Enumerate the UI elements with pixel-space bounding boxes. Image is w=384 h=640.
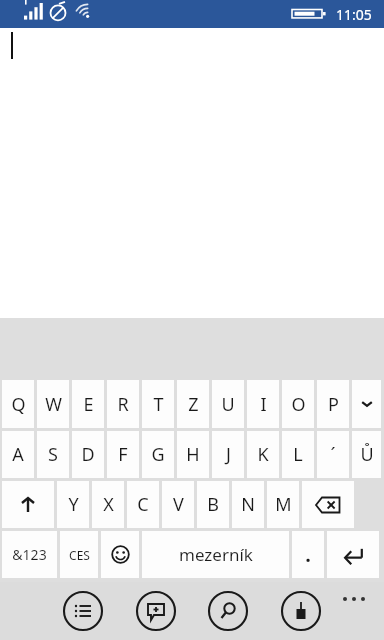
button[interactable]: R [107,380,139,428]
staticText: Ů [360,442,374,467]
button[interactable]: A [2,431,34,478]
button[interactable]: E [72,380,104,428]
button[interactable]: Format list [62,590,104,632]
button[interactable]: Backspace [302,481,354,528]
button[interactable]: W [37,380,69,428]
staticText: L [293,442,303,467]
staticText: 11:05 [336,5,372,24]
staticText: CES [69,547,90,563]
button[interactable]: G [142,431,174,478]
staticText: T [153,392,164,417]
staticText: ´ [330,442,336,467]
button[interactable]: P [317,380,349,428]
button[interactable]: K [247,431,279,478]
staticText: V [173,492,184,517]
other: Enter [342,544,364,566]
button[interactable]: Emoji [101,531,139,578]
button[interactable]: Q [2,380,34,428]
staticText: &123 [12,545,47,564]
staticText: S [48,442,58,467]
staticText: . [305,541,311,568]
staticText: J [226,442,231,467]
other: Backspace [315,496,341,514]
button[interactable]: Ů [352,431,381,478]
button[interactable]: X [92,481,124,528]
button[interactable]: U [212,380,244,428]
staticText: M [275,492,292,517]
button[interactable]: ´ [317,431,349,478]
button[interactable]: T [142,380,174,428]
button[interactable]: mezerník [142,531,289,578]
button[interactable]: &123 [2,531,57,578]
button[interactable]: D [72,431,104,478]
button[interactable] [2,481,54,528]
button[interactable]: Highlight [280,590,322,632]
staticText: D [81,442,95,467]
other: Emoji [111,545,130,564]
staticText: O [291,392,306,417]
button[interactable]: Y [57,481,89,528]
button[interactable]: L [282,431,314,478]
staticText: H [186,442,200,467]
staticText: B [207,492,219,517]
staticText: I [260,392,267,417]
button[interactable]: J [212,431,244,478]
button[interactable]: S [37,431,69,478]
staticText: K [257,442,269,467]
staticText: E [83,392,94,417]
staticText: Y [68,492,79,517]
staticText: X [103,492,114,517]
button[interactable]: Enter [327,531,379,578]
staticText: F [118,442,128,467]
button[interactable]: Z [177,380,209,428]
staticText: N [241,492,255,517]
staticText: Q [11,392,26,417]
button[interactable]: I [247,380,279,428]
button[interactable]: B [197,481,229,528]
staticText: Z [188,392,199,417]
staticText: C [137,492,149,517]
button[interactable]: CES [60,531,98,578]
button[interactable]: C [127,481,159,528]
button[interactable] [352,380,381,428]
button[interactable]: H [177,431,209,478]
button[interactable]: N [232,481,264,528]
staticText: R [117,392,129,417]
button[interactable]: F [107,431,139,478]
staticText: G [151,442,165,467]
button[interactable]: Search [207,590,249,632]
staticText: A [12,442,24,467]
button[interactable]: M [267,481,299,528]
staticText: U [221,392,235,417]
staticText: P [328,392,339,417]
other: More options [342,594,366,604]
button[interactable]: . [292,531,324,578]
staticText: W [45,392,62,417]
button[interactable]: Add comment [135,590,177,632]
button[interactable]: O [282,380,314,428]
staticText: mezerník [179,543,253,566]
button[interactable]: V [162,481,194,528]
